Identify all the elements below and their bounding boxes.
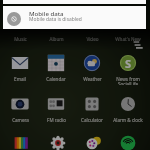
staticText: Alarm & clock [113, 117, 143, 123]
button[interactable]: Photos [8, 130, 34, 150]
staticText: Album [49, 36, 64, 42]
staticText: Music [14, 36, 27, 42]
button[interactable]: S [110, 53, 146, 85]
staticText: Calculator [81, 117, 103, 123]
button[interactable]: Music [2, 34, 38, 44]
staticText: FM radio [47, 117, 66, 123]
button[interactable]: Album [38, 34, 74, 44]
staticText: Weather [83, 76, 102, 82]
button[interactable]: What's New [110, 34, 146, 44]
staticText: News from SocialLife [116, 76, 140, 85]
staticText: What's New [115, 36, 141, 42]
button[interactable]: Calendar [38, 53, 74, 85]
button[interactable]: Mobile data [3, 6, 146, 29]
button[interactable]: Alarm & clock [110, 94, 146, 126]
button[interactable]: Spotify [115, 130, 141, 150]
staticText: Calendar [46, 76, 66, 82]
staticText: Mobile data [29, 9, 64, 17]
button[interactable]: Calculator [74, 94, 110, 126]
button[interactable]: Camera [2, 94, 38, 126]
staticText: S [125, 56, 132, 71]
staticText: Video [86, 36, 99, 42]
button[interactable]: Settings [45, 130, 71, 150]
button[interactable]: FM radio [38, 94, 74, 126]
button[interactable]: Video [74, 34, 110, 44]
button[interactable]: Weather [74, 53, 110, 85]
button[interactable]: Gallery [80, 130, 106, 150]
staticText: Email [14, 76, 26, 82]
staticText: Camera [12, 117, 29, 123]
staticText: Mobile data is disabled [29, 16, 82, 23]
button[interactable]: Email [2, 53, 38, 85]
